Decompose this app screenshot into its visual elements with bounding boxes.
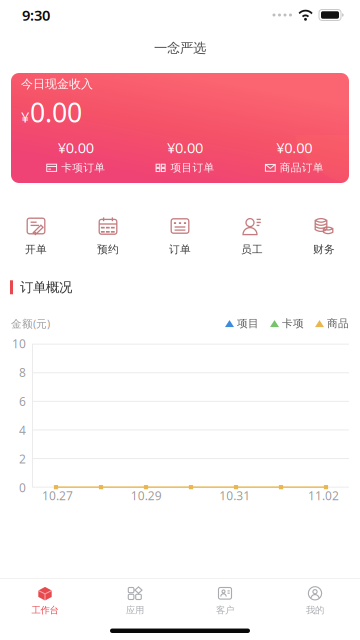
staticText: 0.00 [30,94,82,130]
staticText: 应用 [126,604,144,616]
staticText: 工作台 [31,604,58,616]
staticText: 11.02 [308,488,339,503]
staticText: 金额(元) [11,316,50,331]
staticText: ¥0.00 [276,138,312,157]
staticText: 6 [19,393,26,409]
staticText: 4 [19,422,26,438]
staticText: 订单 [169,243,191,256]
button[interactable]: 应用 [90,586,180,616]
staticText: 2 [19,451,26,467]
button[interactable]: 客户 [180,586,270,616]
button[interactable]: 工作台 [0,586,90,616]
staticText: 客户 [216,604,234,616]
staticText: 商品订单 [280,161,324,174]
staticText: 8 [19,364,26,380]
staticText: 预约 [97,243,119,256]
button[interactable]: ¥0.00 [130,138,240,174]
staticText: 项目 [237,317,259,330]
staticText: 10.31 [219,488,250,503]
staticText: 员工 [241,243,263,256]
button[interactable]: 我的 [270,586,360,616]
staticText: 今日现金收入 [21,77,93,91]
button[interactable]: 开单 [0,212,72,260]
staticText: 卡项 [282,317,304,330]
staticText: 10.29 [131,488,162,503]
staticText: 我的 [306,604,324,616]
button[interactable]: 订单 [144,212,216,260]
staticText: 订单概况 [20,279,72,295]
staticText: 开单 [25,243,47,256]
staticText: 0 [19,480,26,496]
button[interactable]: 预约 [72,212,144,260]
button[interactable]: 员工 [216,212,288,260]
staticText: ¥ [21,107,29,126]
staticText: 10.27 [42,488,73,503]
staticText: ¥0.00 [167,138,203,157]
staticText: ¥0.00 [58,138,94,157]
staticText: 10 [12,336,26,352]
staticText: 财务 [313,243,335,256]
staticText: 9:30 [22,5,50,25]
staticText: 一念严选 [154,40,206,56]
staticText: 商品 [327,317,349,330]
button[interactable]: ¥0.00 [240,138,349,174]
button[interactable]: 财务 [288,212,360,260]
staticText: 卡项订单 [61,161,105,174]
button[interactable]: ¥0.00 [21,138,130,174]
staticText: 项目订单 [170,161,214,174]
